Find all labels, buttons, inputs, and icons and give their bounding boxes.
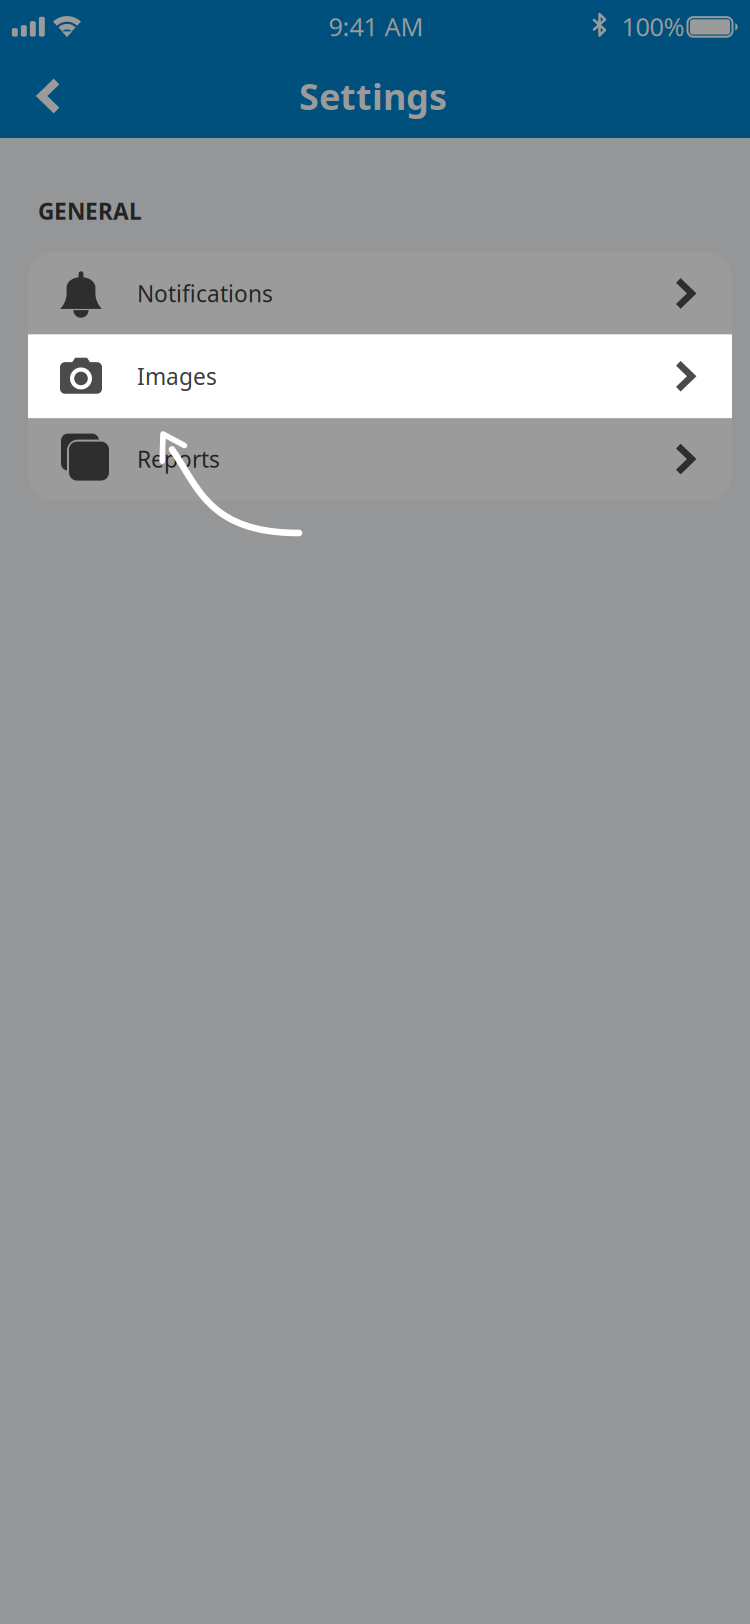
button[interactable]: Reports — [28, 418, 732, 500]
staticText: Images — [137, 361, 217, 391]
staticText: 100% — [621, 10, 684, 43]
staticText: Settings — [299, 72, 447, 120]
button[interactable]: Notifications — [28, 252, 732, 335]
button[interactable]: Images — [28, 334, 732, 418]
staticText: Notifications — [137, 278, 273, 308]
button[interactable]: Back — [13, 61, 85, 131]
staticText: GENERAL — [38, 196, 142, 226]
staticText: Reports — [137, 444, 220, 474]
staticText: 9:41 AM — [328, 10, 423, 43]
staticText: Images — [137, 361, 217, 391]
button[interactable]: Images — [28, 335, 732, 418]
